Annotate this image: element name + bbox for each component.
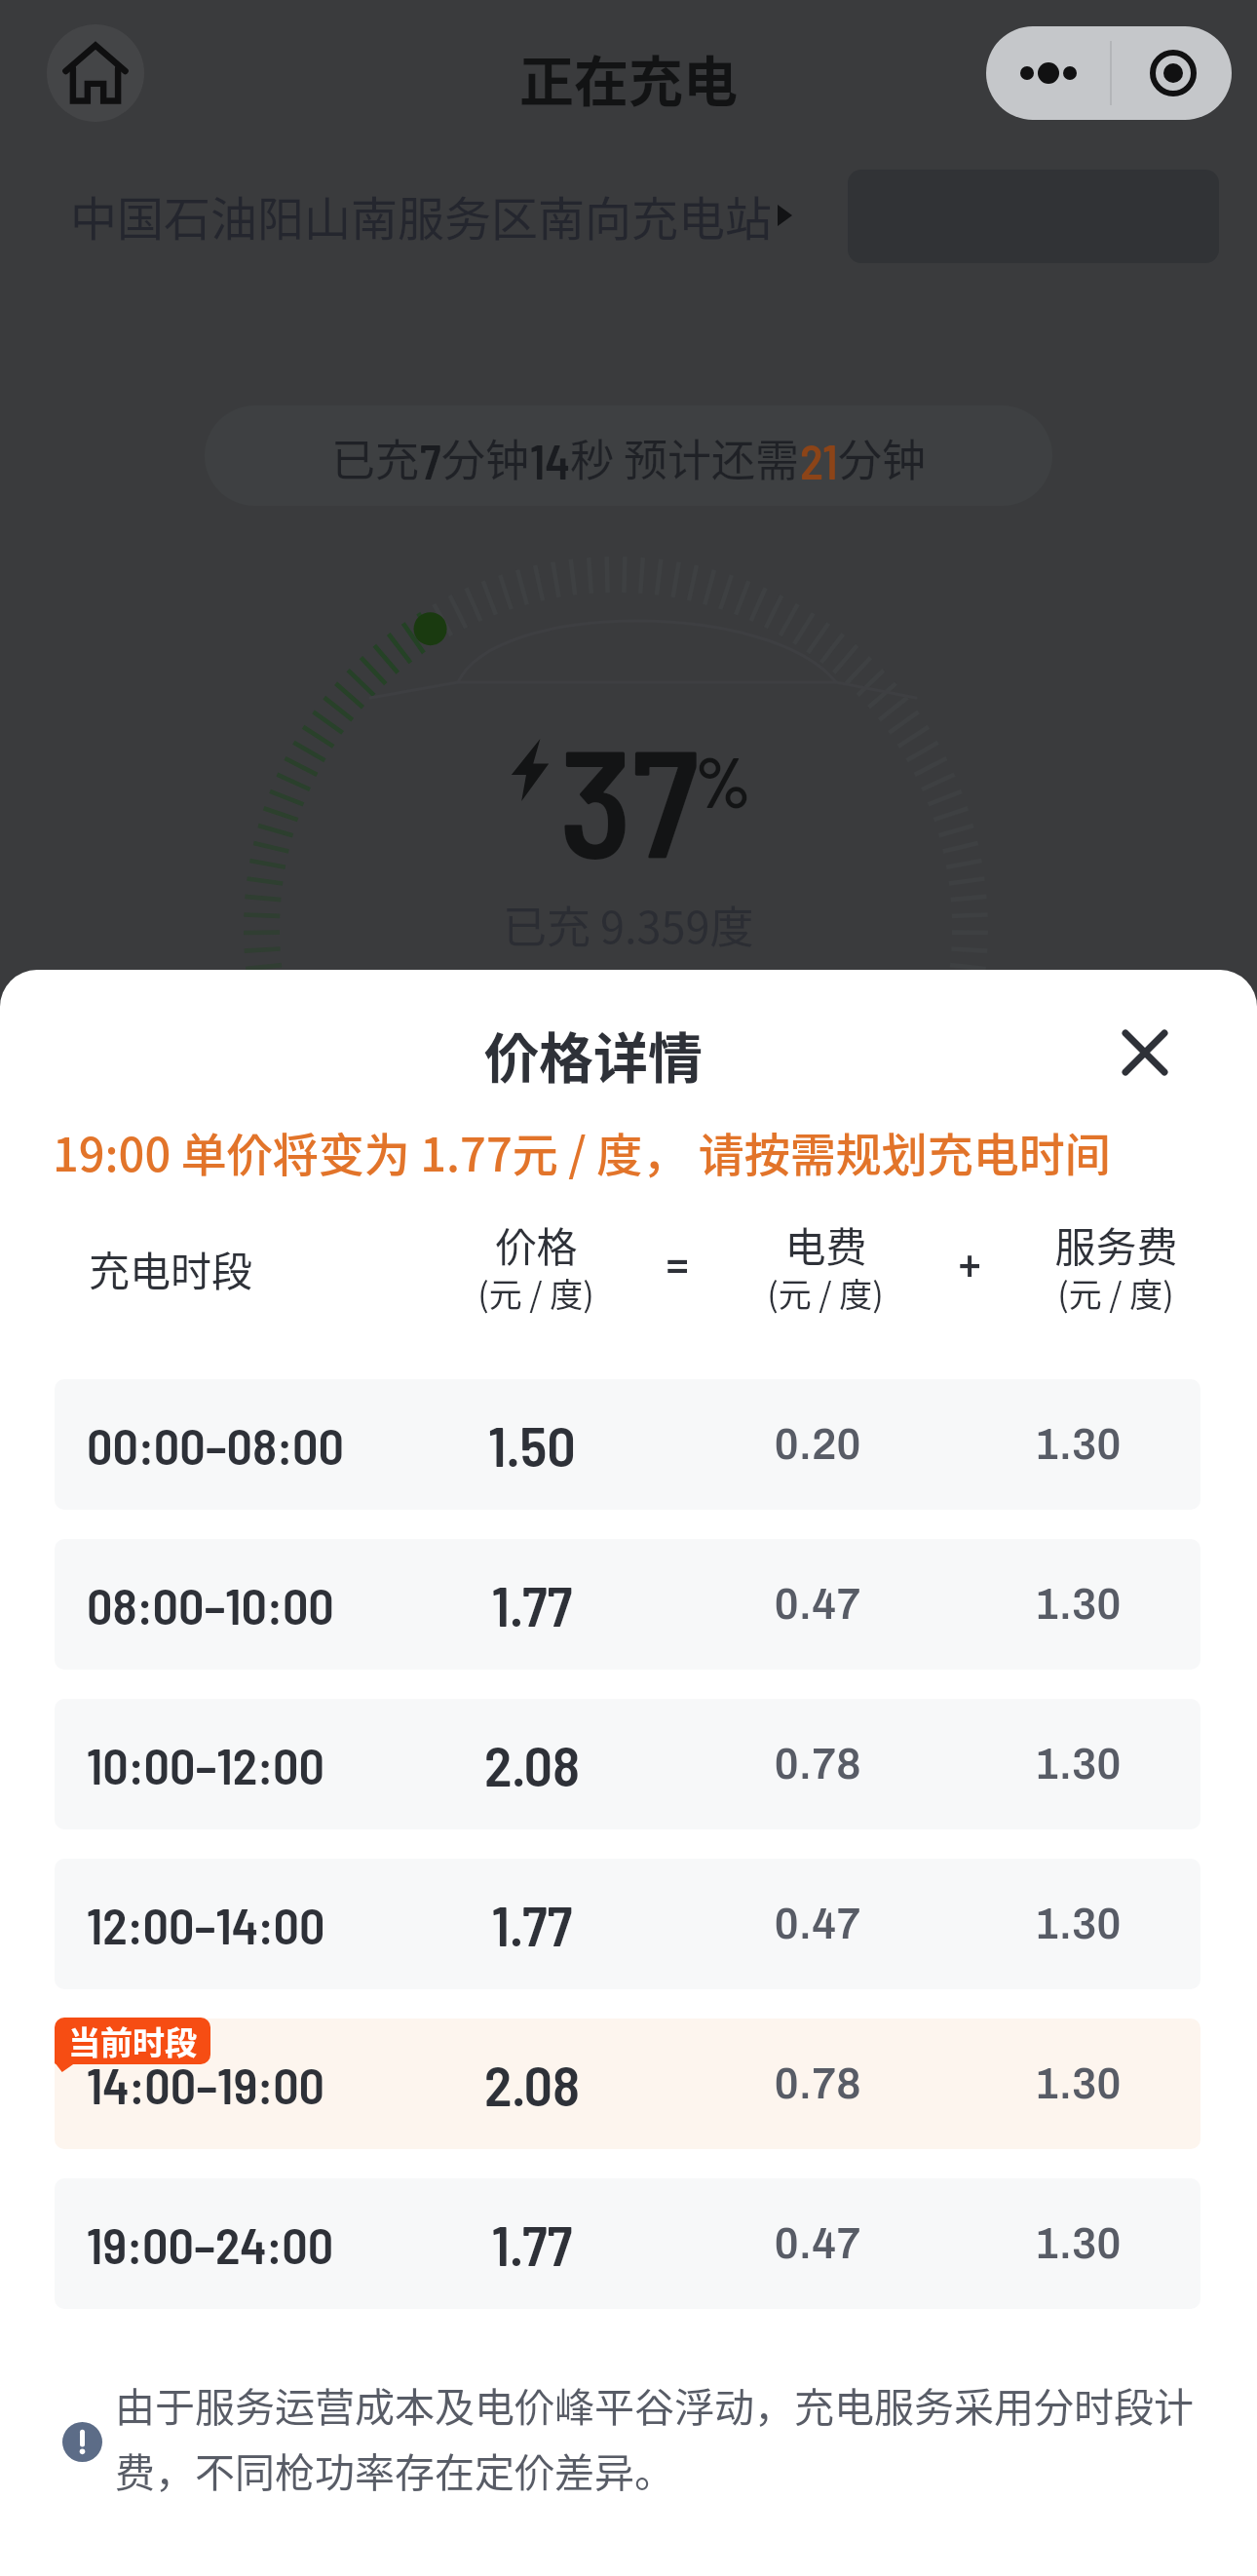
staticText: = bbox=[580, 1241, 775, 1286]
staticText: 1.77 bbox=[435, 1890, 629, 1958]
staticText: 1.30 bbox=[980, 1741, 1175, 1788]
staticText: (元 / 度) bbox=[1057, 1269, 1174, 1317]
staticText: 1.30 bbox=[980, 1901, 1175, 1947]
staticText: 21 bbox=[800, 432, 838, 489]
staticText: 0.78 bbox=[720, 1741, 915, 1788]
staticText: 已充 9.359度 bbox=[503, 893, 754, 956]
staticText: 14:00–19:00 bbox=[87, 2054, 325, 2114]
staticText: 价格详情 bbox=[484, 1015, 703, 1094]
staticText: + bbox=[872, 1241, 1067, 1286]
staticText: 已充 bbox=[331, 426, 420, 489]
staticText: 秒 预计还需 bbox=[570, 426, 800, 489]
staticText: 19:00–24:00 bbox=[87, 2213, 334, 2274]
button[interactable]: 12:00–14:00 bbox=[55, 1859, 1200, 1989]
staticText: 1.77 bbox=[435, 2210, 629, 2278]
staticText: 00:00–08:00 bbox=[87, 1414, 345, 1475]
staticText: 2.08 bbox=[435, 1730, 629, 1798]
button[interactable]: 10:00–12:00 bbox=[55, 1699, 1200, 1829]
staticText: 中国石油阳山南服务区南向充电站 bbox=[70, 181, 773, 250]
staticText: 当前时段 bbox=[68, 2018, 197, 2064]
staticText: 充电时段 bbox=[73, 1239, 268, 1298]
staticText: 19:00 单价将变为 1.77元 / 度， 请按需规划充电时间 bbox=[53, 1118, 1111, 1184]
staticText: 10:00–12:00 bbox=[87, 1734, 324, 1794]
staticText: 0.47 bbox=[720, 1901, 915, 1947]
staticText: 1.30 bbox=[980, 1581, 1175, 1628]
staticText: 08:00–10:00 bbox=[87, 1574, 334, 1634]
staticText: 0.20 bbox=[720, 1421, 915, 1468]
staticText: 1.50 bbox=[435, 1410, 629, 1479]
staticText: 37 bbox=[559, 707, 700, 889]
staticText: 7 bbox=[420, 432, 441, 489]
staticText: 1.30 bbox=[980, 1421, 1175, 1468]
button[interactable]: Home bbox=[47, 24, 144, 122]
button[interactable]: 14:00–19:00 bbox=[55, 2019, 1200, 2149]
staticText: 1.30 bbox=[980, 2220, 1175, 2267]
button[interactable]: 中国石油阳山南服务区南向充电站 bbox=[70, 181, 792, 250]
staticText: 0.78 bbox=[720, 2060, 915, 2107]
staticText: 14 bbox=[530, 432, 570, 489]
staticText: 正在充电 bbox=[519, 38, 738, 117]
staticText: 12:00–14:00 bbox=[87, 1894, 325, 1954]
staticText: 2.08 bbox=[435, 2050, 629, 2118]
button[interactable]: Close bbox=[1106, 1014, 1184, 1092]
staticText: 由于服务运营成本及电价峰平谷浮动，充电服务采用分时段计费，不同枪功率存在定价差异… bbox=[115, 2375, 1226, 2498]
button[interactable]: 08:00–10:00 bbox=[55, 1539, 1200, 1670]
staticText: % bbox=[695, 738, 751, 822]
staticText: (元 / 度) bbox=[767, 1269, 884, 1317]
staticText: 1.77 bbox=[435, 1570, 629, 1638]
button[interactable]: 00:00–08:00 bbox=[55, 1379, 1200, 1510]
staticText: 分钟 bbox=[441, 426, 530, 489]
staticText: 0.47 bbox=[720, 1581, 915, 1628]
staticText: (元 / 度) bbox=[477, 1269, 594, 1317]
staticText: 1.30 bbox=[980, 2060, 1175, 2107]
staticText: 服务费 bbox=[1054, 1214, 1178, 1274]
staticText: 价格 bbox=[495, 1214, 578, 1274]
button[interactable]: More options bbox=[986, 26, 1232, 120]
staticText: 0.47 bbox=[720, 2220, 915, 2267]
staticText: 分钟 bbox=[838, 426, 927, 489]
button[interactable]: 19:00–24:00 bbox=[55, 2178, 1200, 2309]
staticText: 电费 bbox=[784, 1214, 867, 1274]
